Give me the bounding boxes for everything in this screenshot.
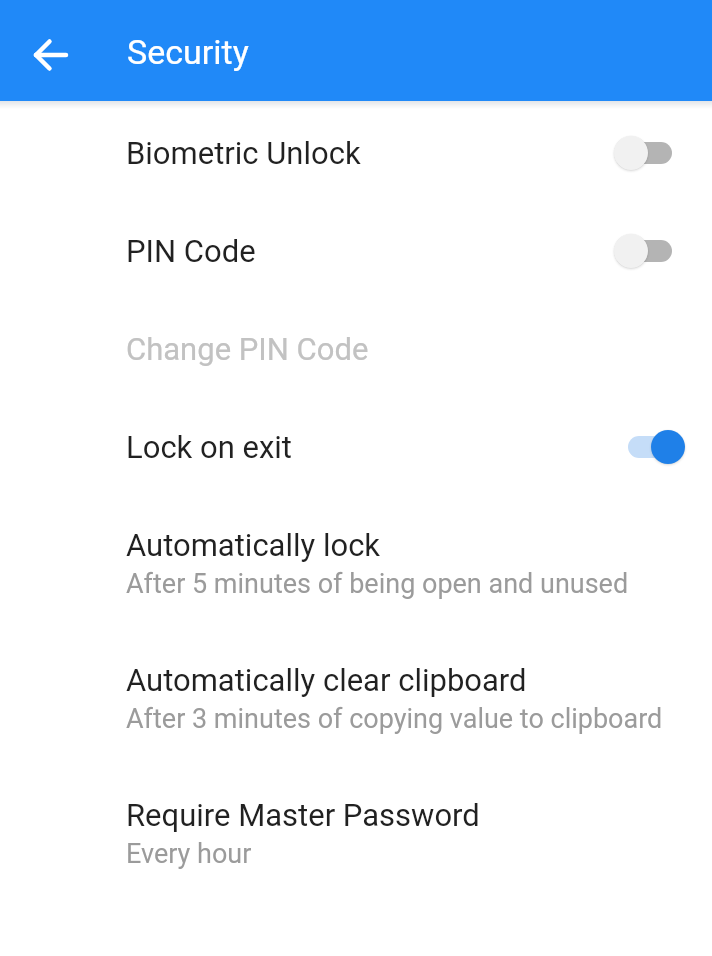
button[interactable]: Automatically lock [0,496,712,631]
staticText: Automatically clear clipboard [126,662,527,698]
button[interactable]: Biometric Unlock [0,104,712,202]
staticText: Lock on exit [126,429,292,465]
staticText: PIN Code [126,233,256,269]
button[interactable] [614,430,685,464]
button[interactable]: Change PIN Code [0,300,712,398]
staticText: Require Master Password [126,797,480,833]
staticText: Change PIN Code [126,331,369,367]
staticText: Automatically lock [126,527,381,563]
staticText: Biometric Unlock [126,135,361,171]
staticText: Security [127,32,249,72]
button[interactable]: PIN Code [0,202,712,300]
staticText: Every hour [126,838,252,870]
staticText: After 5 minutes of being open and unused [126,568,629,600]
button[interactable]: Lock on exit [0,398,712,496]
button[interactable] [29,29,73,73]
button[interactable]: Require Master Password [0,766,712,901]
button[interactable] [614,234,685,268]
button[interactable] [614,136,685,170]
button[interactable]: Automatically clear clipboard [0,631,712,766]
staticText: After 3 minutes of copying value to clip… [126,703,663,735]
